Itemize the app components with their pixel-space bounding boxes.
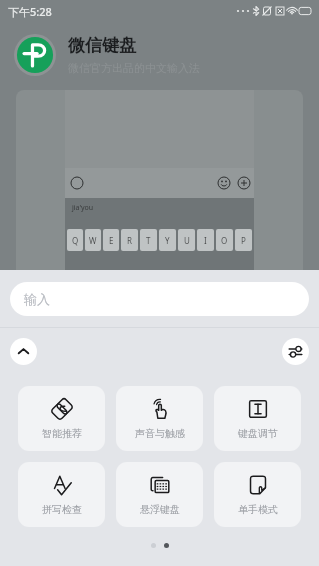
staticText: 微信官方出品的中文输入法: [68, 61, 200, 75]
staticText: 单手模式: [238, 503, 278, 516]
staticText: T: [146, 235, 151, 246]
button[interactable]: Settings: [282, 338, 309, 365]
button[interactable]: 拼写检查: [18, 462, 105, 527]
staticText: 微信键盘: [68, 35, 136, 56]
staticText: 智能推荐: [42, 427, 82, 440]
staticText: 悬浮键盘: [140, 503, 180, 516]
staticText: 下午5:28: [8, 4, 52, 19]
staticText: jia'you: [72, 203, 94, 213]
staticText: 键盘调节: [238, 427, 278, 440]
staticText: U: [184, 235, 190, 246]
button[interactable]: Collapse: [10, 338, 37, 365]
staticText: 拼写检查: [42, 503, 82, 516]
staticText: Y: [165, 235, 170, 246]
button[interactable]: 声音与触感: [116, 386, 203, 451]
staticText: Q: [72, 235, 79, 246]
staticText: P: [241, 235, 246, 246]
staticText: I: [204, 235, 207, 246]
staticText: O: [221, 235, 228, 246]
staticText: R: [127, 235, 132, 246]
button[interactable]: 键盘调节: [214, 386, 301, 451]
staticText: 输入: [24, 291, 50, 307]
button[interactable]: 单手模式: [214, 462, 301, 527]
staticText: 声音与触感: [135, 427, 185, 440]
staticText: E: [109, 235, 114, 246]
button[interactable]: 输入: [10, 282, 309, 316]
staticText: W: [89, 235, 97, 246]
button[interactable]: 悬浮键盘: [116, 462, 203, 527]
button[interactable]: 智能推荐: [18, 386, 105, 451]
